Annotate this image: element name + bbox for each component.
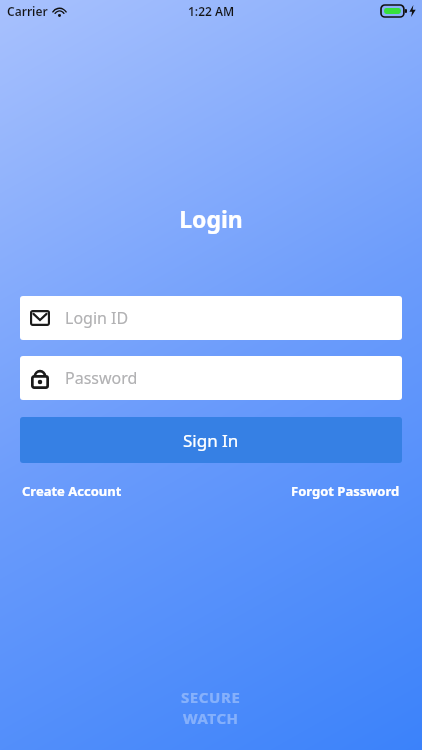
staticText: Carrier <box>7 3 48 19</box>
staticText: WATCH <box>183 708 239 728</box>
button[interactable]: Create Account <box>20 478 124 504</box>
button[interactable]: Sign In <box>20 417 402 463</box>
button[interactable]: Password <box>20 356 402 400</box>
button[interactable]: Forgot Password <box>289 478 402 504</box>
staticText: Login <box>179 203 243 234</box>
staticText: Create Account <box>22 482 122 500</box>
button[interactable]: Login ID <box>20 296 402 340</box>
staticText: Login ID <box>65 307 129 329</box>
staticText: Forgot Password <box>291 482 400 500</box>
staticText: 1:22 AM <box>188 3 235 19</box>
staticText: SECURE <box>181 687 241 707</box>
staticText: Sign In <box>183 429 239 452</box>
other: Secure Watch logo <box>181 687 241 728</box>
staticText: Password <box>65 367 138 389</box>
